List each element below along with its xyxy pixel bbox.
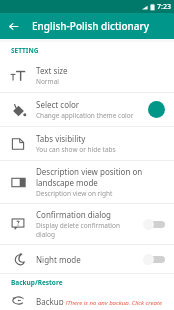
button[interactable]: Toggle — [143, 218, 165, 230]
button[interactable]: Backup [There is no any backup. Click cr… — [0, 291, 174, 310]
staticText: Display delete confirmation dialog — [36, 221, 137, 239]
staticText: Change application theme color — [36, 111, 134, 120]
staticText: Select color — [36, 99, 80, 110]
staticText: Description view position on landscape m… — [36, 166, 165, 188]
staticText: Night mode — [36, 254, 81, 265]
button[interactable]: Select color — [0, 93, 174, 126]
staticText: Tabs visibility — [36, 133, 86, 144]
button[interactable]: Text size — [0, 59, 174, 92]
staticText: You can show or hide tabs — [36, 145, 116, 154]
button[interactable]: Toggle — [143, 253, 165, 265]
button[interactable]: Back — [0, 13, 26, 39]
staticText: Confirmation dialog — [36, 209, 112, 220]
staticText: SETTING — [11, 46, 39, 55]
staticText: Description view on right — [36, 189, 113, 198]
staticText: Text size — [36, 65, 68, 76]
staticText: 7:23 — [157, 2, 171, 12]
staticText: Backup/Restore — [11, 278, 63, 287]
staticText: Backup [There is no any backup. Click cr… — [36, 296, 165, 305]
staticText: Normal — [36, 77, 59, 86]
staticText: English-Polish dictionary — [32, 19, 150, 33]
button[interactable]: Night mode — [0, 245, 174, 273]
button[interactable]: Tabs visibility — [0, 127, 174, 160]
button[interactable]: Description view position on landscape m… — [0, 161, 174, 203]
button[interactable]: Confirmation dialog — [0, 204, 174, 244]
